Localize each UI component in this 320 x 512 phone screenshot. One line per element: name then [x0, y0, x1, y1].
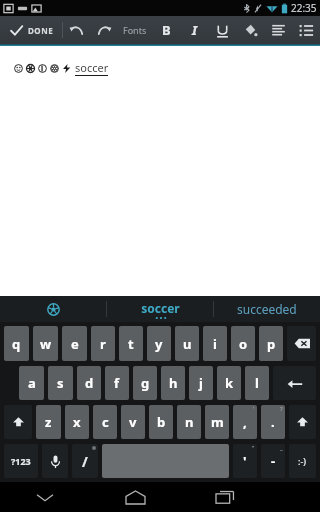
staticText: , [243, 413, 247, 431]
button[interactable]: ?123 [4, 444, 38, 478]
button[interactable]: Suggestion soccer ball [0, 296, 106, 322]
staticText: v [129, 413, 137, 431]
staticText: soccer [141, 300, 180, 316]
button[interactable]: Underline [208, 16, 236, 44]
button[interactable]: Enter [273, 366, 316, 400]
staticText: ' [253, 405, 255, 413]
staticText: g [141, 374, 150, 392]
button[interactable]: y [147, 326, 171, 361]
button[interactable]: h [161, 366, 185, 400]
button[interactable]: z [36, 405, 61, 439]
staticText: u [183, 335, 192, 353]
button[interactable]: o [231, 326, 255, 361]
staticText: b [157, 413, 166, 431]
button[interactable]: Voice input [42, 444, 68, 478]
button[interactable]: c [93, 405, 117, 439]
button[interactable]: " [233, 444, 257, 478]
button[interactable]: s [48, 366, 73, 400]
staticText: DONE [28, 25, 54, 36]
button[interactable]: Delete [287, 326, 316, 361]
button[interactable]: / [72, 444, 98, 478]
button[interactable]: n [177, 405, 201, 439]
staticText: _ [280, 444, 283, 452]
staticText: ? [280, 405, 283, 413]
button[interactable]: Home [90, 482, 180, 512]
button[interactable]: :-) [289, 444, 316, 478]
button[interactable]: Highlight color [236, 16, 264, 44]
staticText: d [85, 374, 94, 392]
staticText: r [100, 335, 106, 353]
staticText: f [114, 374, 120, 392]
button[interactable]: Shift [4, 405, 32, 439]
staticText: l [255, 374, 259, 392]
staticText: w [40, 335, 52, 353]
button[interactable]: Redo [90, 16, 118, 44]
button[interactable]: b [149, 405, 173, 439]
button[interactable]: ? [261, 405, 285, 439]
staticText: / [82, 452, 88, 471]
staticText: c [102, 413, 109, 431]
staticText: " [252, 444, 255, 452]
staticText: a [28, 374, 36, 392]
button[interactable]: g [133, 366, 157, 400]
staticText: s [57, 374, 64, 392]
button[interactable]: k [217, 366, 241, 400]
button[interactable]: _ [261, 444, 285, 478]
button[interactable]: w [33, 326, 58, 361]
staticText: m [211, 413, 224, 431]
button[interactable]: Undo [63, 16, 90, 44]
button[interactable]: Shift [289, 405, 316, 439]
staticText: x [73, 413, 81, 431]
button[interactable]: t [119, 326, 143, 361]
staticText: q [12, 335, 21, 353]
button[interactable]: i [203, 326, 227, 361]
staticText: succeeded [237, 301, 297, 317]
staticText: ?123 [11, 455, 31, 467]
staticText: y [155, 335, 163, 353]
staticText: k [225, 374, 234, 392]
button[interactable]: p [259, 326, 283, 361]
staticText: j [199, 374, 203, 392]
button[interactable]: m [205, 405, 229, 439]
staticText: B [162, 21, 171, 39]
staticText: - [271, 452, 276, 470]
staticText: h [169, 374, 178, 392]
staticText: z [45, 413, 52, 431]
button[interactable]: Align [264, 16, 292, 44]
staticText: t [128, 335, 134, 353]
button[interactable]: d [77, 366, 101, 400]
button[interactable]: l [245, 366, 269, 400]
button[interactable]: x [65, 405, 89, 439]
button[interactable]: Hide keyboard [0, 482, 90, 512]
staticText: I [192, 21, 197, 39]
button[interactable]: Fonts [118, 16, 152, 44]
button[interactable]: f [105, 366, 129, 400]
staticText: 22:35 [291, 1, 317, 15]
staticText: soccer [75, 60, 109, 75]
staticText: :-) [298, 455, 307, 467]
button[interactable]: j [189, 366, 213, 400]
button[interactable]: ' [233, 405, 257, 439]
button[interactable]: B [152, 16, 180, 44]
staticText: Fonts [123, 24, 147, 36]
staticText: ' [243, 452, 247, 470]
button[interactable]: u [175, 326, 199, 361]
button[interactable]: succeeded [214, 296, 320, 322]
button[interactable]: e [62, 326, 87, 361]
button[interactable]: v [121, 405, 145, 439]
button[interactable]: DONE [0, 16, 62, 44]
button[interactable]: List [292, 16, 320, 44]
button[interactable]: q [4, 326, 29, 361]
staticText: o [239, 335, 248, 353]
button[interactable]: a [19, 366, 44, 400]
button[interactable]: r [91, 326, 115, 361]
staticText: p [267, 335, 276, 353]
staticText: i [213, 335, 217, 353]
button[interactable]: Recent apps [180, 482, 270, 512]
button[interactable]: I [180, 16, 208, 44]
staticText: . [271, 413, 275, 431]
staticText: e [71, 335, 79, 353]
staticText: n [185, 413, 194, 431]
button[interactable]: soccer [107, 296, 213, 322]
